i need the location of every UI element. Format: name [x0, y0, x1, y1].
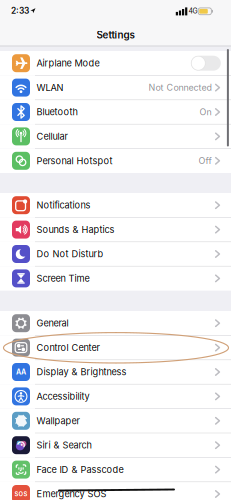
button[interactable]: Notifications [0, 193, 231, 217]
staticText: Wallpaper [36, 415, 79, 426]
button[interactable]: Face ID & Passcode [0, 457, 231, 482]
button[interactable]: Airplane Mode [0, 51, 231, 75]
button[interactable]: Accessibility [0, 384, 231, 409]
staticText: Display & Brightness [36, 366, 126, 377]
button[interactable]: Cellular [0, 124, 231, 149]
staticText: SOS [14, 490, 27, 498]
staticText: Control Center [36, 342, 99, 353]
staticText: Accessibility [36, 391, 89, 402]
staticText: Emergency SOS [36, 488, 106, 499]
staticText: Face ID & Passcode [36, 464, 123, 475]
staticText: On [199, 107, 211, 117]
staticText: Off [198, 155, 211, 166]
button[interactable]: Siri & Search [0, 433, 231, 457]
staticText: Notifications [36, 200, 90, 211]
button[interactable]: Sounds & Haptics [0, 217, 231, 242]
staticText: Cellular [36, 131, 67, 142]
button[interactable]: AA [0, 360, 231, 384]
button[interactable]: Screen Time [0, 266, 231, 291]
button[interactable]: Control Center [0, 335, 231, 360]
staticText: Sounds & Haptics [36, 224, 114, 235]
button[interactable]: WLAN [0, 75, 231, 100]
staticText: Not Connected [148, 82, 211, 93]
button[interactable]: Wallpaper [0, 409, 231, 433]
staticText: 4G [189, 7, 198, 15]
button[interactable]: General [0, 311, 231, 335]
staticText: Personal Hotspot [36, 155, 112, 166]
staticText: Siri & Search [36, 440, 91, 451]
staticText: AA [16, 368, 26, 376]
staticText: WLAN [36, 82, 63, 93]
staticText: Do Not Disturb [36, 248, 103, 259]
staticText: Screen Time [36, 273, 89, 284]
button[interactable]: Bluetooth [0, 100, 231, 124]
button[interactable]: SOS [0, 482, 231, 500]
staticText: General [36, 318, 68, 329]
button[interactable]: Do Not Disturb [0, 242, 231, 266]
staticText: Airplane Mode [36, 58, 99, 69]
button[interactable]: Personal Hotspot [0, 149, 231, 173]
staticText: Settings [96, 29, 134, 41]
staticText: 2:33 [11, 5, 29, 16]
staticText: Bluetooth [36, 106, 77, 117]
